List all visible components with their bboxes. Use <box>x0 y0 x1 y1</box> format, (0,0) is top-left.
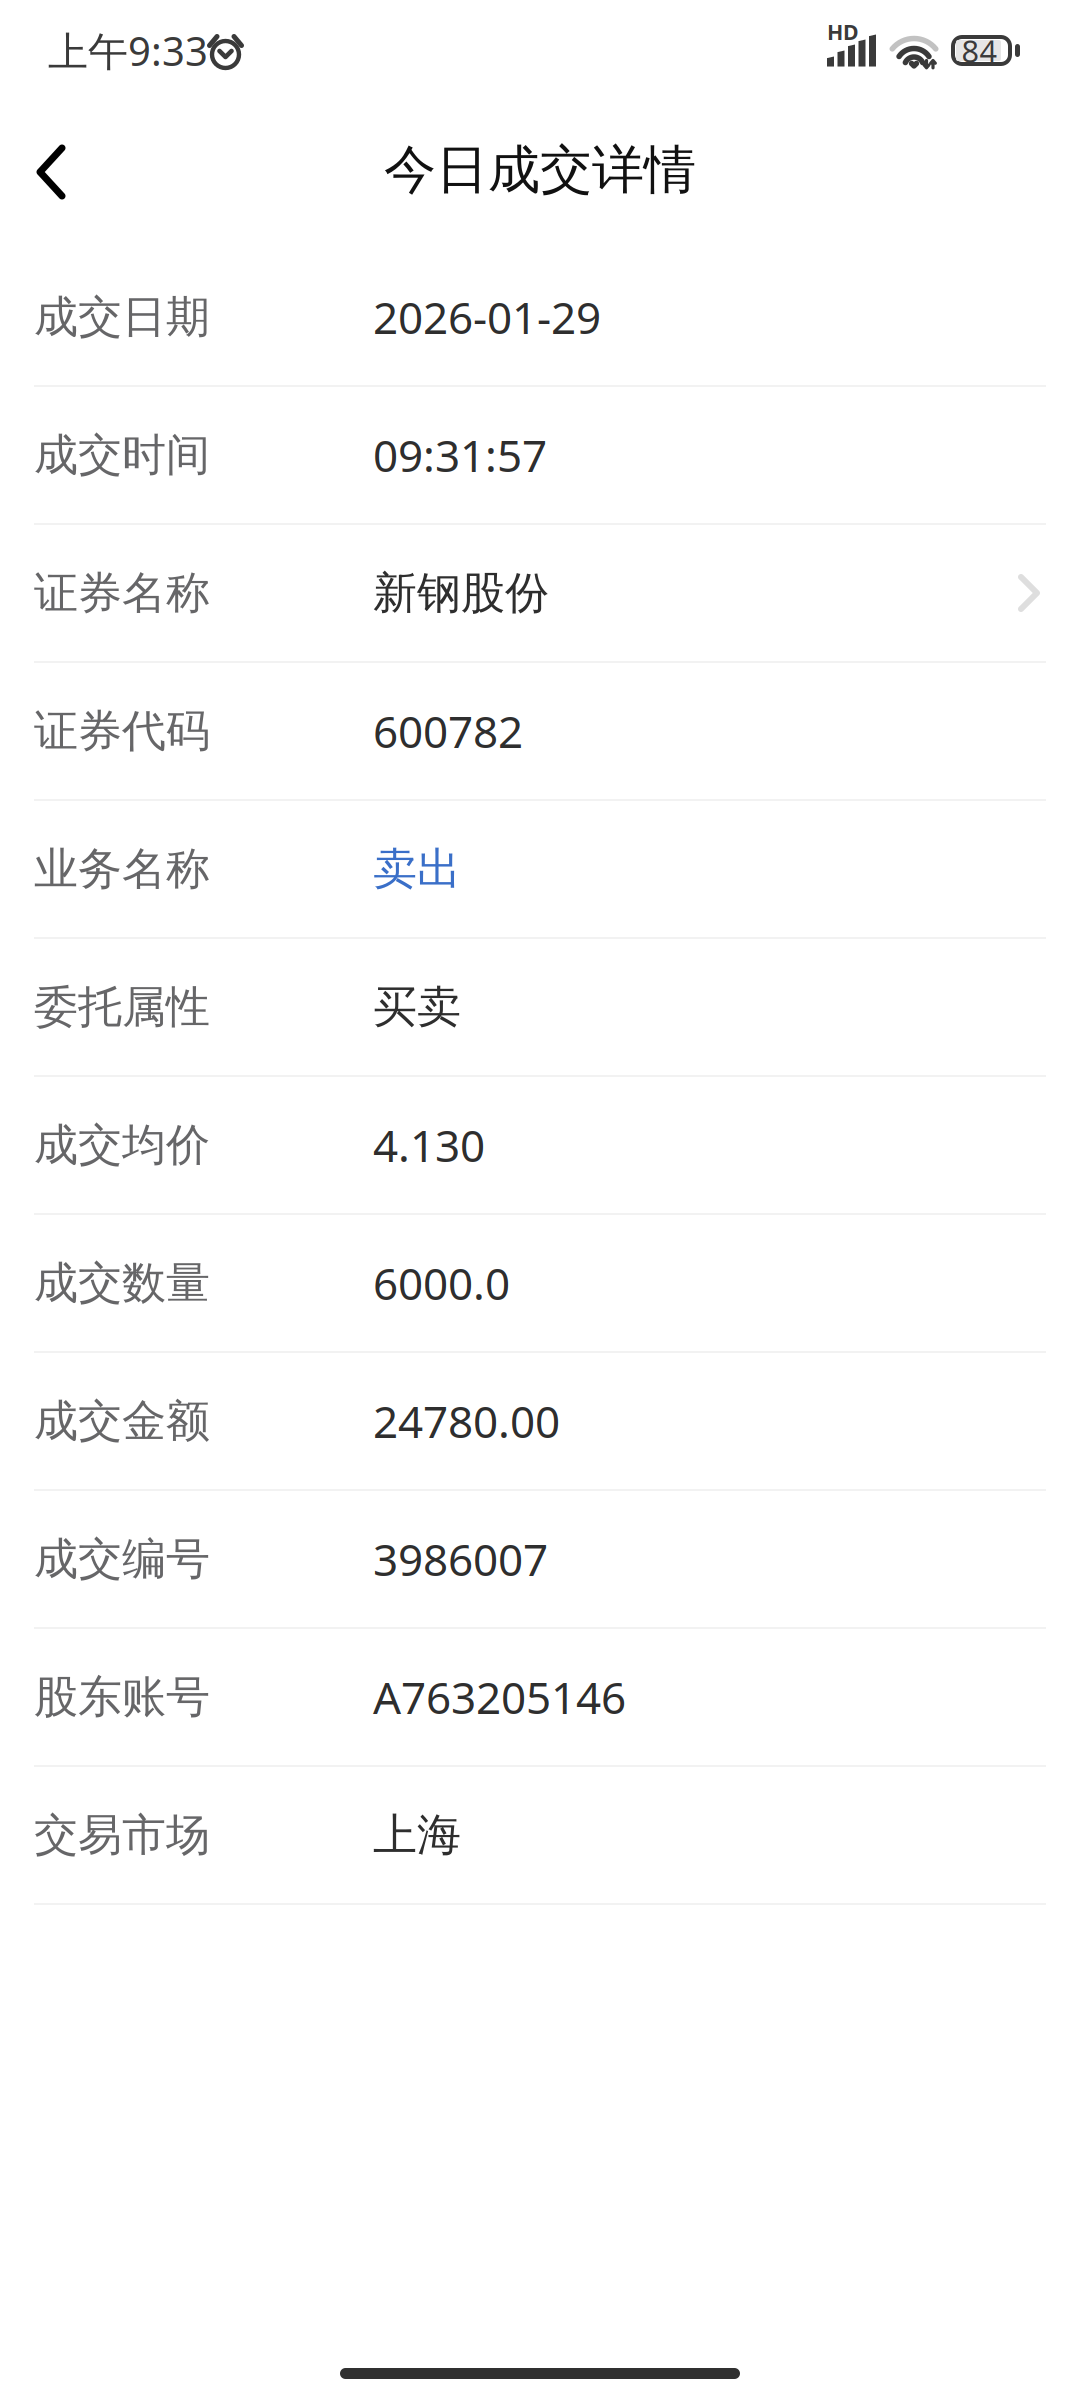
staticText: 3986007 <box>373 1530 548 1588</box>
button[interactable]: 业务名称 <box>0 801 1080 939</box>
staticText: 新钢股份 <box>373 566 549 620</box>
staticText: 委托属性 <box>34 980 210 1034</box>
button[interactable]: 成交时间 <box>0 387 1080 525</box>
staticText: 600782 <box>373 702 523 760</box>
button[interactable]: 证券名称 <box>0 525 1080 663</box>
staticText: HD <box>827 17 859 46</box>
button[interactable]: 成交数量 <box>0 1215 1080 1353</box>
staticText: 成交数量 <box>34 1256 210 1310</box>
button[interactable]: 交易市场 <box>0 1767 1080 1905</box>
staticText: 4.130 <box>373 1116 485 1174</box>
button[interactable]: 委托属性 <box>0 939 1080 1077</box>
button[interactable]: 成交均价 <box>0 1077 1080 1215</box>
staticText: 成交金额 <box>34 1394 210 1448</box>
button[interactable]: 成交编号 <box>0 1491 1080 1629</box>
staticText: 09:31:57 <box>373 426 547 484</box>
staticText: 24780.00 <box>373 1392 560 1450</box>
staticText: 证券代码 <box>34 704 210 758</box>
staticText: A763205146 <box>373 1668 626 1726</box>
button[interactable]: 成交日期 <box>0 249 1080 387</box>
staticText: 上海 <box>373 1808 461 1862</box>
staticText: 今日成交详情 <box>384 138 696 202</box>
button[interactable]: 成交金额 <box>0 1353 1080 1491</box>
staticText: 成交日期 <box>34 290 210 344</box>
staticText: 买卖 <box>373 980 461 1034</box>
button[interactable]: 证券代码 <box>0 663 1080 801</box>
staticText: 卖出 <box>373 842 461 896</box>
staticText: 成交时间 <box>34 428 210 482</box>
button[interactable]: 股东账号 <box>0 1629 1080 1767</box>
staticText: 84 <box>961 30 997 71</box>
staticText: 成交编号 <box>34 1532 210 1586</box>
staticText: 成交均价 <box>34 1118 210 1172</box>
staticText: 上午9:33 <box>48 24 208 77</box>
staticText: 业务名称 <box>34 842 210 896</box>
staticText: 2026-01-29 <box>373 288 601 346</box>
staticText: 证券名称 <box>34 566 210 620</box>
staticText: 6000.0 <box>373 1254 510 1312</box>
button[interactable]: Back <box>0 101 106 249</box>
staticText: 股东账号 <box>34 1670 210 1724</box>
staticText: 交易市场 <box>34 1808 210 1862</box>
